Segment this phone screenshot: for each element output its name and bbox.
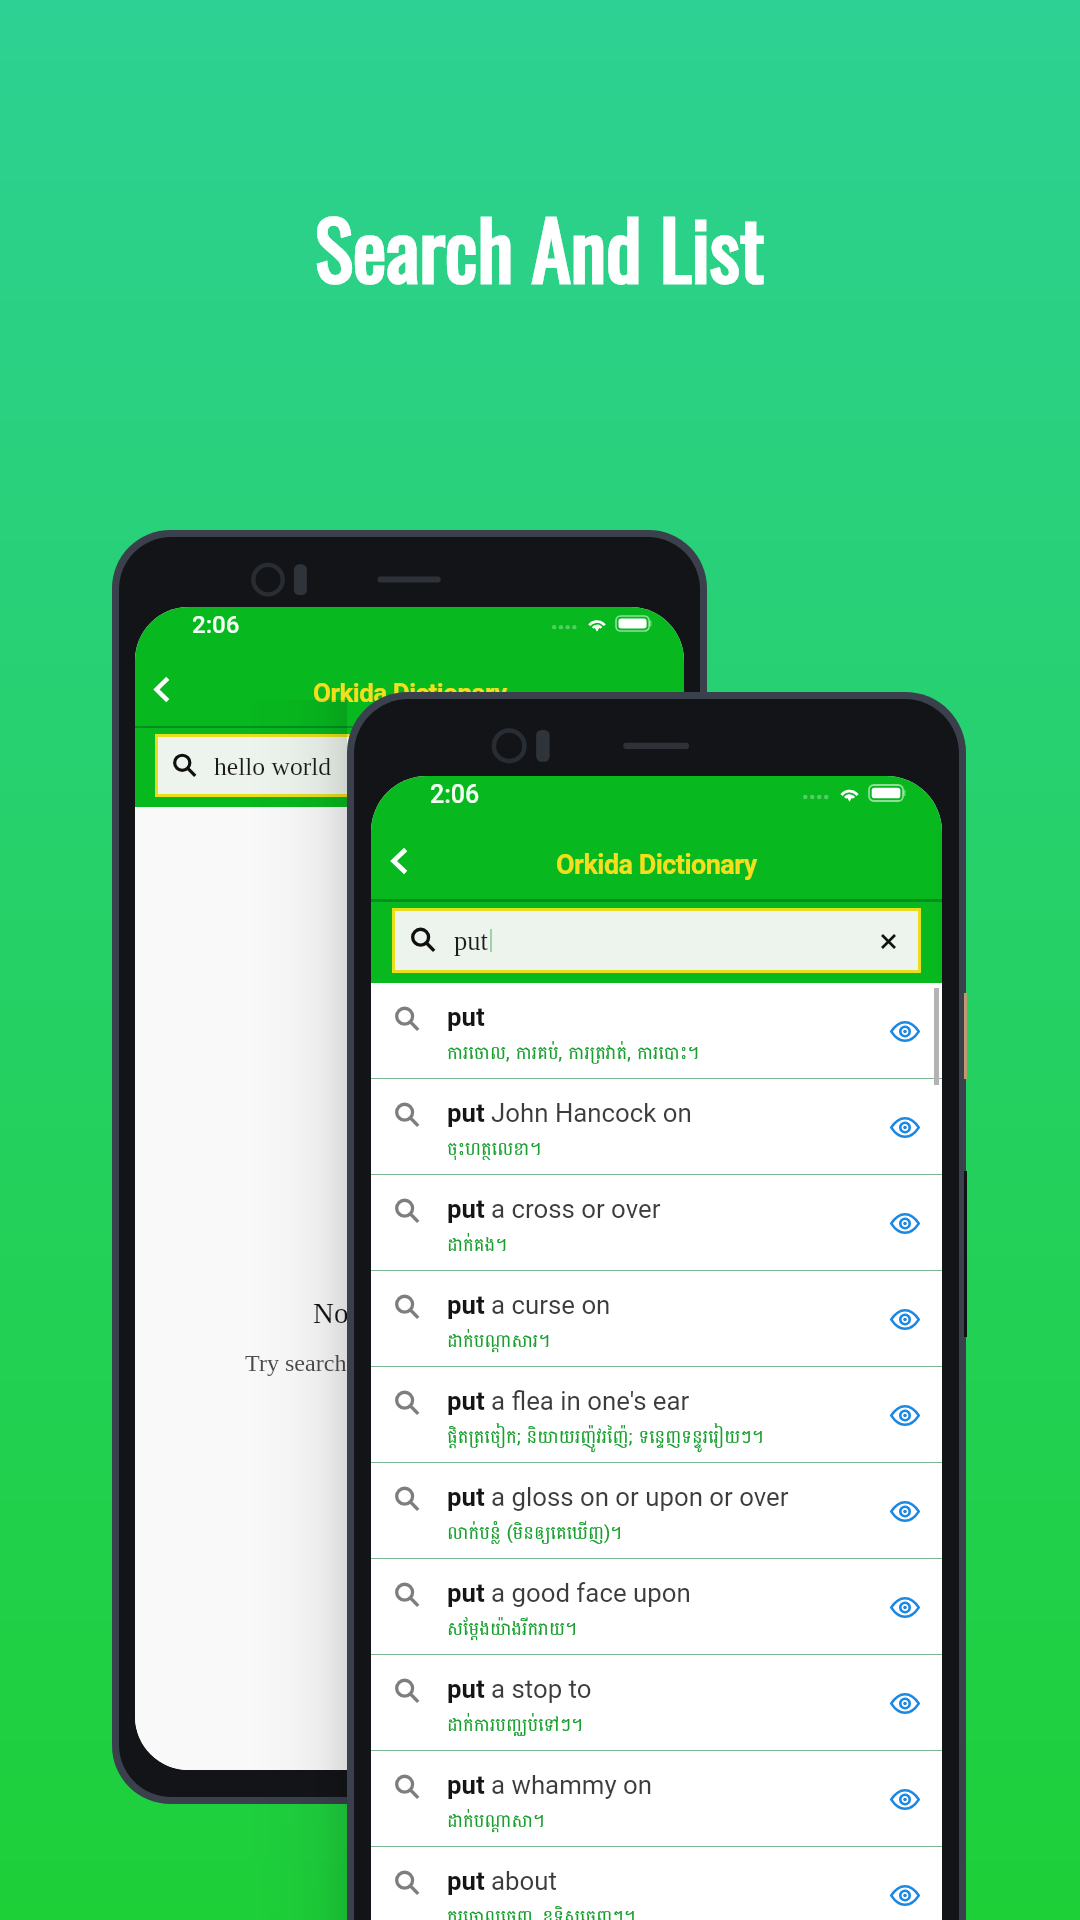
staticText: 2:06 — [430, 780, 480, 809]
button[interactable]: put a stop to — [371, 1655, 942, 1750]
button[interactable]: put a good face upon — [371, 1559, 942, 1654]
button[interactable]: Back — [140, 663, 184, 715]
staticText: hello world — [214, 752, 332, 780]
button[interactable]: put a cross or over — [371, 1175, 942, 1270]
staticText: ដាក់បណ្ដាសារ។ — [447, 1325, 551, 1358]
staticText: ករចោលចេញ, ឧទិសចេញៗ។ — [447, 1901, 636, 1920]
button[interactable]: put a flea in one's ear — [371, 1367, 942, 1462]
button[interactable]: hello world — [155, 734, 665, 797]
button[interactable]: put — [371, 983, 942, 1078]
button[interactable]: put — [392, 908, 921, 973]
staticText: ដាក់ការបញ្ឈប់ទៅៗ។ — [447, 1709, 583, 1742]
button[interactable]: put a curse on — [371, 1271, 942, 1366]
button[interactable]: put John Hancock on — [371, 1079, 942, 1174]
staticText: put a gloss on or upon or over — [447, 1482, 789, 1512]
button[interactable]: Clear search — [865, 918, 911, 964]
staticText: ផ្ដិតត្រចៀក; និយាយរញ៉ូវរញ៉ៃ; ទន្ទេញទន្ទូ… — [447, 1421, 764, 1454]
button[interactable]: View definition — [865, 1655, 939, 1750]
button[interactable]: View definition — [865, 983, 939, 1078]
button[interactable]: View definition — [865, 1367, 939, 1462]
button[interactable]: View definition — [865, 1175, 939, 1270]
staticText: សម្ដែងយ៉ាងរីករាយ។ — [447, 1613, 577, 1646]
button[interactable]: put about — [371, 1847, 942, 1920]
staticText: put a good face upon — [447, 1578, 691, 1608]
button[interactable]: put a whammy on — [371, 1751, 942, 1846]
staticText: Orkida Dictionary — [313, 678, 507, 709]
staticText: put a cross or over — [447, 1194, 661, 1224]
staticText: put a flea in one's ear — [447, 1386, 690, 1416]
staticText: ការចោល, ការគប់, ការត្រវាត់, ការបោះ។ — [447, 1037, 700, 1070]
button[interactable]: put a gloss on or upon or over — [371, 1463, 942, 1558]
staticText: put a curse on — [447, 1290, 611, 1320]
staticText: put a whammy on — [447, 1770, 652, 1800]
staticText: Orkida Dictionary — [556, 849, 757, 881]
staticText: ដាក់គង។ — [447, 1229, 508, 1262]
button[interactable]: Back — [376, 834, 422, 888]
staticText: Search And List — [315, 188, 765, 307]
staticText: put — [447, 1002, 485, 1032]
staticText: ដាក់បណ្ដាសា។ — [447, 1805, 545, 1838]
button[interactable]: View definition — [865, 1463, 939, 1558]
button[interactable]: View definition — [865, 1079, 939, 1174]
staticText: 2:06 — [192, 611, 240, 639]
staticText: Try searching a different keyword — [245, 1350, 574, 1377]
staticText: put John Hancock on — [447, 1098, 692, 1128]
staticText: ចុះហត្ថលេខា។ — [447, 1133, 542, 1166]
staticText: put about — [447, 1866, 557, 1896]
button[interactable]: View definition — [865, 1751, 939, 1846]
staticText: put a stop to — [447, 1674, 592, 1704]
staticText: No results found — [313, 1297, 506, 1329]
button[interactable]: View definition — [865, 1559, 939, 1654]
staticText: លាក់បន្លំ (មិនឲ្យគេឃើញ)។ — [447, 1517, 622, 1550]
button[interactable]: View definition — [865, 1271, 939, 1366]
button[interactable]: View definition — [865, 1847, 939, 1920]
staticText: put — [454, 926, 488, 955]
